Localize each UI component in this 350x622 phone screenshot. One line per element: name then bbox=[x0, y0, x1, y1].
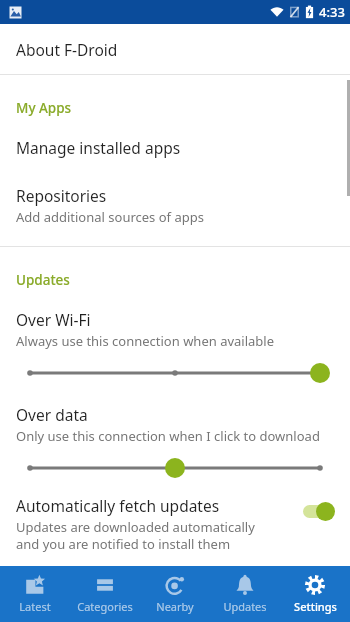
button[interactable]: Manage installed apps bbox=[0, 117, 350, 160]
button[interactable]: Automatically fetch updates bbox=[0, 479, 350, 553]
staticText: Updates are downloaded automatically and… bbox=[16, 518, 255, 553]
staticText: Updates bbox=[16, 271, 70, 289]
staticText: Over data bbox=[16, 404, 88, 425]
button[interactable]: Nearby bbox=[140, 566, 210, 622]
staticText: Updates bbox=[223, 599, 267, 614]
staticText: Automatically fetch updates bbox=[16, 495, 220, 516]
button[interactable]: Latest bbox=[0, 566, 70, 622]
staticText: My Apps bbox=[16, 99, 72, 117]
staticText: About F-Droid bbox=[16, 39, 118, 60]
button[interactable]: Over Wi-Fi bbox=[0, 289, 350, 384]
staticText: Nearby bbox=[156, 599, 194, 614]
button[interactable]: About F-Droid bbox=[0, 24, 350, 74]
button[interactable]: Settings bbox=[280, 566, 350, 622]
staticText: Repositories bbox=[16, 185, 107, 206]
staticText: 4:33 bbox=[319, 3, 345, 21]
other: Automatically fetch updates bbox=[300, 500, 338, 522]
button[interactable]: Categories bbox=[70, 566, 140, 622]
button[interactable]: Repositories bbox=[0, 160, 350, 228]
button[interactable]: Over data bbox=[0, 384, 350, 479]
button[interactable]: Updates bbox=[210, 566, 280, 622]
staticText: Add additional sources of apps bbox=[16, 208, 204, 226]
staticText: Manage installed apps bbox=[16, 137, 181, 158]
staticText: Over Wi-Fi bbox=[16, 309, 91, 330]
staticText: Categories bbox=[77, 599, 133, 614]
staticText: Settings bbox=[294, 599, 337, 614]
staticText: Only use this connection when I click to… bbox=[16, 427, 320, 445]
staticText: Always use this connection when availabl… bbox=[16, 332, 275, 350]
staticText: Latest bbox=[19, 599, 51, 614]
